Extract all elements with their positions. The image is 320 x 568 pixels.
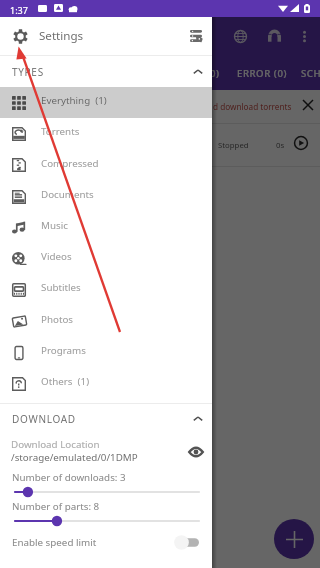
staticText: Subtitles	[41, 281, 81, 294]
staticText: Enable speed limit	[12, 536, 97, 549]
button[interactable]: Everything (1)	[0, 87, 212, 118]
button[interactable]: Magnet link	[262, 24, 286, 48]
staticText: Photos	[41, 313, 74, 326]
button[interactable]: Number of downloads: 3	[0, 470, 212, 499]
button[interactable]: Browse websites	[228, 24, 252, 48]
button[interactable]: Number of parts: 8	[0, 499, 212, 528]
staticText: Others (1)	[41, 375, 90, 388]
button[interactable]: Enable speed limit	[0, 528, 212, 556]
staticText: Settings	[39, 28, 84, 44]
button[interactable]: Subtitles	[0, 274, 212, 305]
staticText: 0)	[210, 67, 220, 80]
staticText: Number of parts: 8	[12, 500, 100, 513]
button[interactable]: Download Location	[0, 434, 212, 470]
staticText: Stopped	[218, 140, 249, 151]
staticText: Number of downloads: 3	[12, 471, 126, 484]
button[interactable]: Torrents	[0, 118, 212, 149]
button[interactable]: Dismiss	[296, 93, 319, 116]
staticText: TYPES	[12, 65, 44, 79]
staticText: 1:37	[10, 4, 28, 16]
staticText: Everything (1)	[41, 94, 107, 107]
button[interactable]: Add download	[274, 519, 314, 559]
button[interactable]: Compressed	[0, 149, 212, 181]
staticText: Programs	[41, 344, 86, 357]
button[interactable]: Programs	[0, 337, 212, 368]
button[interactable]: More options	[292, 24, 316, 48]
staticText: Videos	[41, 250, 72, 263]
button[interactable]: Documents	[0, 181, 212, 212]
button[interactable]: Others (1)	[0, 368, 212, 399]
button[interactable]: ERROR (0)	[228, 56, 296, 90]
button[interactable]: Videos	[0, 243, 212, 274]
button[interactable]: SCH	[301, 56, 320, 90]
staticText: 0s	[276, 140, 285, 151]
button[interactable]: DOWNLOAD	[0, 404, 212, 434]
staticText: /storage/emulated/0/1DMP	[11, 451, 138, 464]
button[interactable]: Show location	[186, 442, 206, 462]
staticText: d download torrents	[213, 101, 292, 112]
staticText: Documents	[41, 188, 94, 201]
staticText: DOWNLOAD	[12, 412, 76, 426]
button[interactable]: Start download	[290, 132, 312, 154]
button[interactable]: TYPES	[0, 56, 212, 87]
button[interactable]: Photos	[0, 305, 212, 337]
staticText: ERROR (0)	[237, 67, 287, 80]
button[interactable]: Music	[0, 212, 212, 243]
staticText: Download Location	[11, 438, 100, 451]
button[interactable]: 0)	[182, 56, 220, 90]
staticText: Compressed	[41, 157, 99, 170]
button[interactable]: Settings	[11, 27, 29, 45]
button[interactable]: Stopped	[0, 124, 320, 166]
staticText: Torrents	[41, 125, 80, 138]
staticText: Music	[41, 219, 68, 232]
staticText: SCH	[301, 67, 320, 80]
button[interactable]: Sort	[188, 28, 204, 44]
